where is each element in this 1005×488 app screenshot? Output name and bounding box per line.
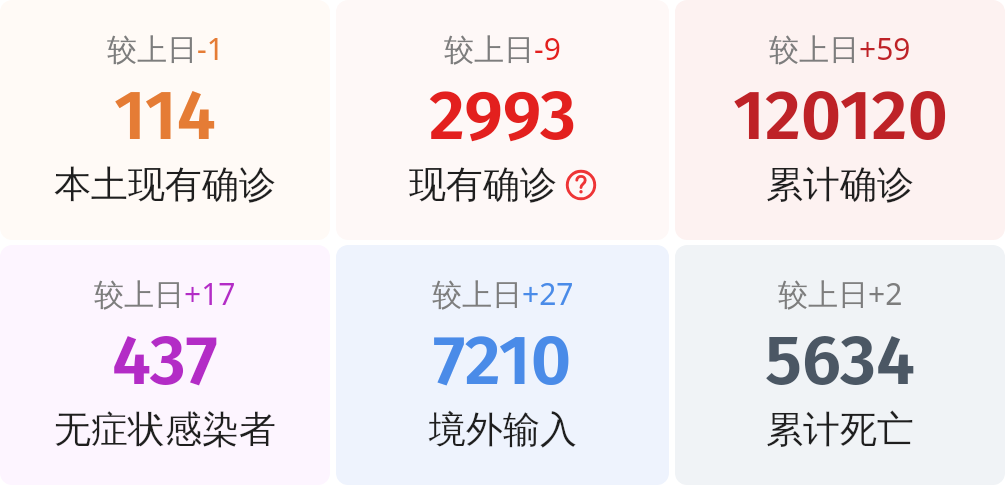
button[interactable]: 较上日-1: [0, 0, 330, 240]
staticText: 境外输入: [429, 406, 577, 453]
staticText: 较上日-1: [107, 28, 224, 69]
staticText: 较上日+2: [778, 273, 903, 314]
button[interactable]: 较上日+59: [675, 0, 1005, 240]
staticText: 2993: [429, 74, 577, 158]
staticText: 437: [112, 319, 218, 403]
staticText: 累计确诊: [766, 161, 914, 208]
staticText: 较上日+59: [769, 28, 911, 69]
staticText: 无症状感染者: [54, 406, 276, 453]
staticText: 现有确诊: [409, 161, 557, 208]
staticText: 累计死亡: [766, 406, 914, 453]
staticText: 较上日+17: [94, 273, 236, 314]
staticText: 120120: [733, 74, 948, 158]
button[interactable]: Help: [565, 169, 597, 201]
button[interactable]: 较上日+2: [675, 245, 1005, 485]
staticText: 较上日-9: [444, 28, 561, 69]
staticText: 本土现有确诊: [54, 161, 276, 208]
staticText: 5634: [765, 319, 915, 403]
button[interactable]: 较上日-9: [336, 0, 669, 240]
button[interactable]: 较上日+17: [0, 245, 330, 485]
staticText: 7210: [433, 319, 572, 403]
staticText: 114: [114, 74, 216, 158]
staticText: 较上日+27: [432, 273, 574, 314]
button[interactable]: 较上日+27: [336, 245, 669, 485]
